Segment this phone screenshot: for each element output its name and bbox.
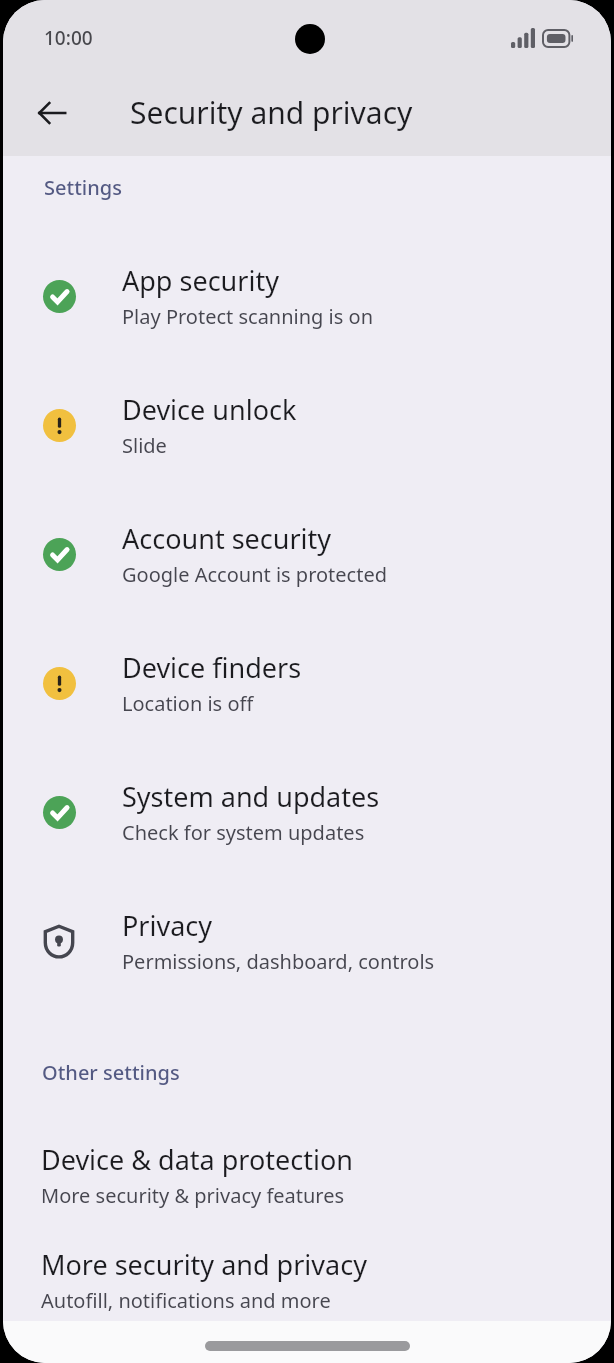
button[interactable]: Device & data protection bbox=[3, 1110, 611, 1239]
staticText: Device & data protection bbox=[41, 1141, 353, 1178]
staticText: Device finders bbox=[122, 649, 302, 686]
button[interactable]: More security and privacy bbox=[3, 1239, 611, 1321]
staticText: 10:00 bbox=[44, 25, 93, 51]
staticText: Google Account is protected bbox=[122, 561, 388, 588]
button[interactable]: Device unlock bbox=[3, 360, 611, 489]
staticText: Account security bbox=[122, 520, 332, 557]
button[interactable]: App security bbox=[3, 231, 611, 360]
staticText: More security & privacy features bbox=[41, 1182, 345, 1209]
staticText: More security and privacy bbox=[41, 1246, 367, 1283]
button[interactable]: Device finders bbox=[3, 618, 611, 747]
staticText: Security and privacy bbox=[130, 92, 413, 133]
staticText: Permissions, dashboard, controls bbox=[122, 948, 435, 975]
button[interactable]: Back bbox=[23, 84, 81, 142]
staticText: Location is off bbox=[122, 690, 254, 717]
staticText: Check for system updates bbox=[122, 819, 365, 846]
staticText: System and updates bbox=[122, 778, 380, 815]
button[interactable]: Privacy bbox=[3, 876, 611, 1005]
staticText: Settings bbox=[44, 174, 122, 201]
staticText: Device unlock bbox=[122, 391, 297, 428]
button[interactable]: Account security bbox=[3, 489, 611, 618]
staticText: Privacy bbox=[122, 907, 213, 944]
staticText: App security bbox=[122, 262, 279, 299]
staticText: Autofill, notifications and more bbox=[41, 1287, 331, 1314]
staticText: Other settings bbox=[42, 1059, 180, 1086]
button[interactable]: System and updates bbox=[3, 747, 611, 876]
staticText: Slide bbox=[122, 432, 167, 459]
staticText: Play Protect scanning is on bbox=[122, 303, 373, 330]
